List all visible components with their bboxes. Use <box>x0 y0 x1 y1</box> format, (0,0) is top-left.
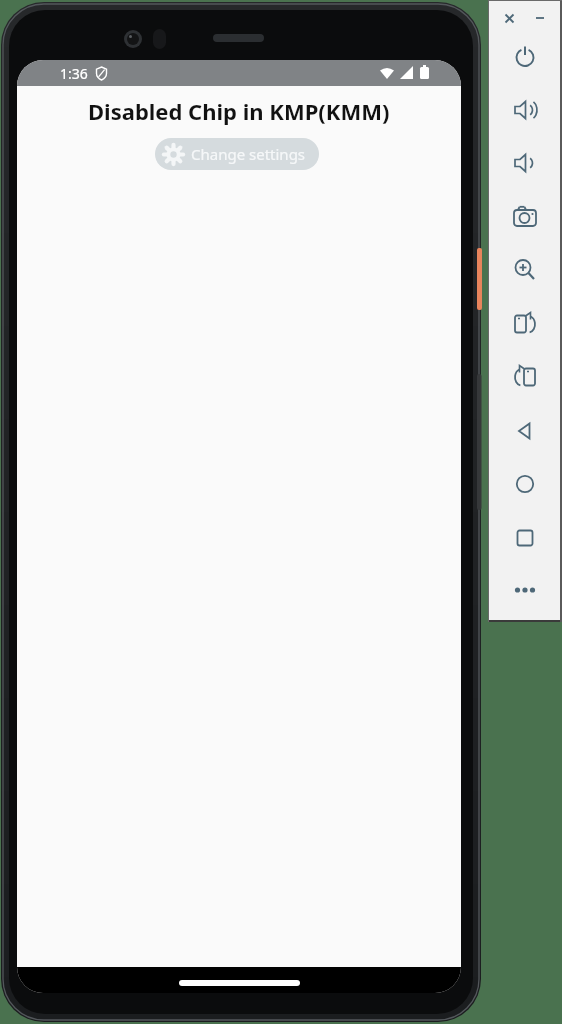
button[interactable] <box>505 304 545 344</box>
staticText: Disabled Chip in KMP(KMM) <box>88 96 390 126</box>
button[interactable] <box>505 90 545 130</box>
button[interactable] <box>505 464 545 504</box>
button[interactable] <box>505 250 545 290</box>
button[interactable] <box>505 143 545 183</box>
button[interactable] <box>505 357 545 397</box>
button[interactable] <box>505 197 545 237</box>
button[interactable] <box>501 10 517 26</box>
staticText: Change settings <box>191 144 306 164</box>
button[interactable] <box>532 10 548 26</box>
button[interactable]: Change settings <box>155 138 319 170</box>
button[interactable] <box>505 570 545 610</box>
button[interactable] <box>505 518 545 558</box>
button[interactable] <box>505 37 545 77</box>
button[interactable] <box>505 411 545 451</box>
staticText: 1:36 <box>60 64 88 83</box>
